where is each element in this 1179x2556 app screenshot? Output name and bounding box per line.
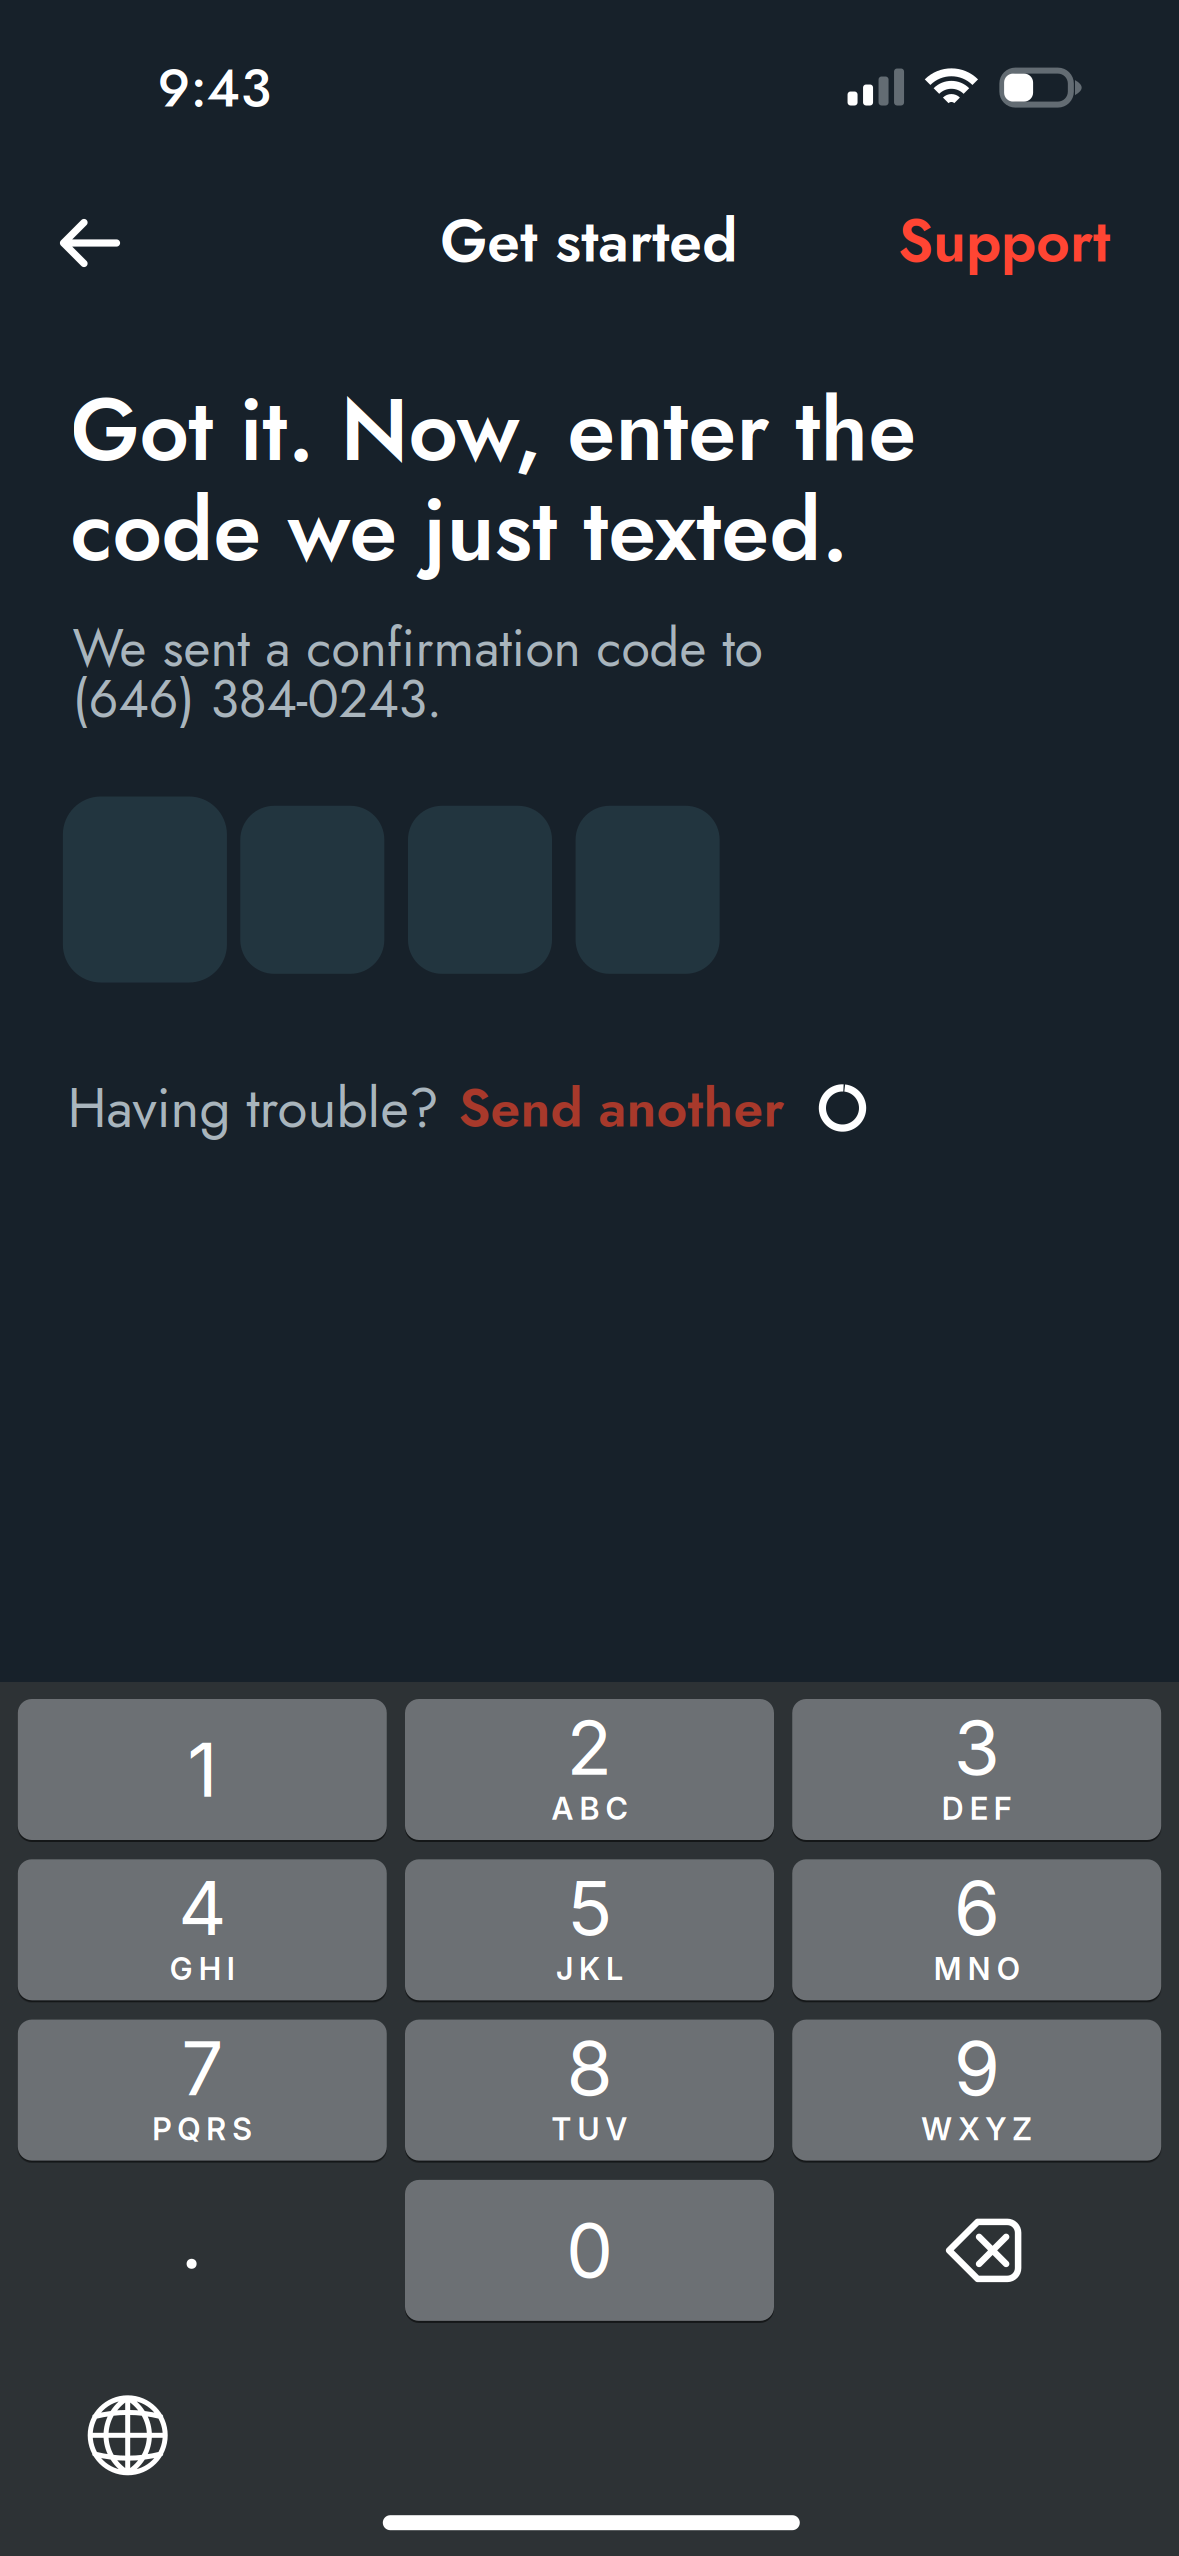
staticText: (646) 384-0243. <box>73 661 443 736</box>
button[interactable]: Period <box>18 2180 387 2321</box>
staticText: JKL <box>556 1950 623 1987</box>
button[interactable]: 6 <box>792 1859 1161 2000</box>
button[interactable]: 7 <box>18 2020 387 2161</box>
staticText: WXYZ <box>921 2110 1032 2148</box>
staticText: TUV <box>551 2110 627 2148</box>
staticText: 7 <box>181 2023 223 2113</box>
button[interactable]: 0 <box>405 2180 774 2321</box>
staticText: Send another <box>458 1069 784 1147</box>
button[interactable]: Back <box>33 188 146 297</box>
staticText: We sent a confirmation code to <box>73 610 763 685</box>
staticText: Got it. Now, enter the <box>71 367 917 493</box>
button[interactable]: 8 <box>405 2020 774 2161</box>
staticText: 3 <box>954 1702 1000 1793</box>
button[interactable]: Next keyboard <box>64 2372 191 2499</box>
staticText: 2 <box>566 1702 612 1793</box>
button[interactable]: 1 <box>18 1699 387 1840</box>
staticText: 6 <box>954 1863 1000 1953</box>
staticText: 1 <box>187 1724 217 1815</box>
staticText: 9 <box>954 2023 1000 2113</box>
button[interactable]: 3 <box>792 1699 1161 1840</box>
staticText: code we just texted. <box>71 467 849 593</box>
button[interactable]: 4 <box>18 1859 387 2000</box>
staticText: 4 <box>178 1863 226 1953</box>
staticText: 8 <box>566 2023 612 2113</box>
staticText: GHI <box>170 1950 235 1987</box>
staticText: PQRS <box>152 2110 252 2148</box>
button[interactable]: Delete <box>799 2180 1168 2321</box>
staticText: DEF <box>942 1790 1012 1827</box>
staticText: 9:43 <box>158 49 272 127</box>
staticText: ABC <box>551 1790 627 1827</box>
staticText: MNO <box>934 1950 1020 1987</box>
button[interactable]: 5 <box>405 1859 774 2000</box>
button[interactable]: Send another <box>438 1055 784 1161</box>
button[interactable]: 9 <box>792 2020 1161 2161</box>
staticText: Support <box>898 199 1110 283</box>
staticText: 0 <box>566 2205 613 2295</box>
staticText: Get started <box>440 199 737 283</box>
button[interactable]: Support <box>870 173 1138 309</box>
button[interactable]: 2 <box>405 1699 774 1840</box>
staticText: 5 <box>567 1863 612 1953</box>
staticText: Having trouble? <box>67 1068 438 1147</box>
